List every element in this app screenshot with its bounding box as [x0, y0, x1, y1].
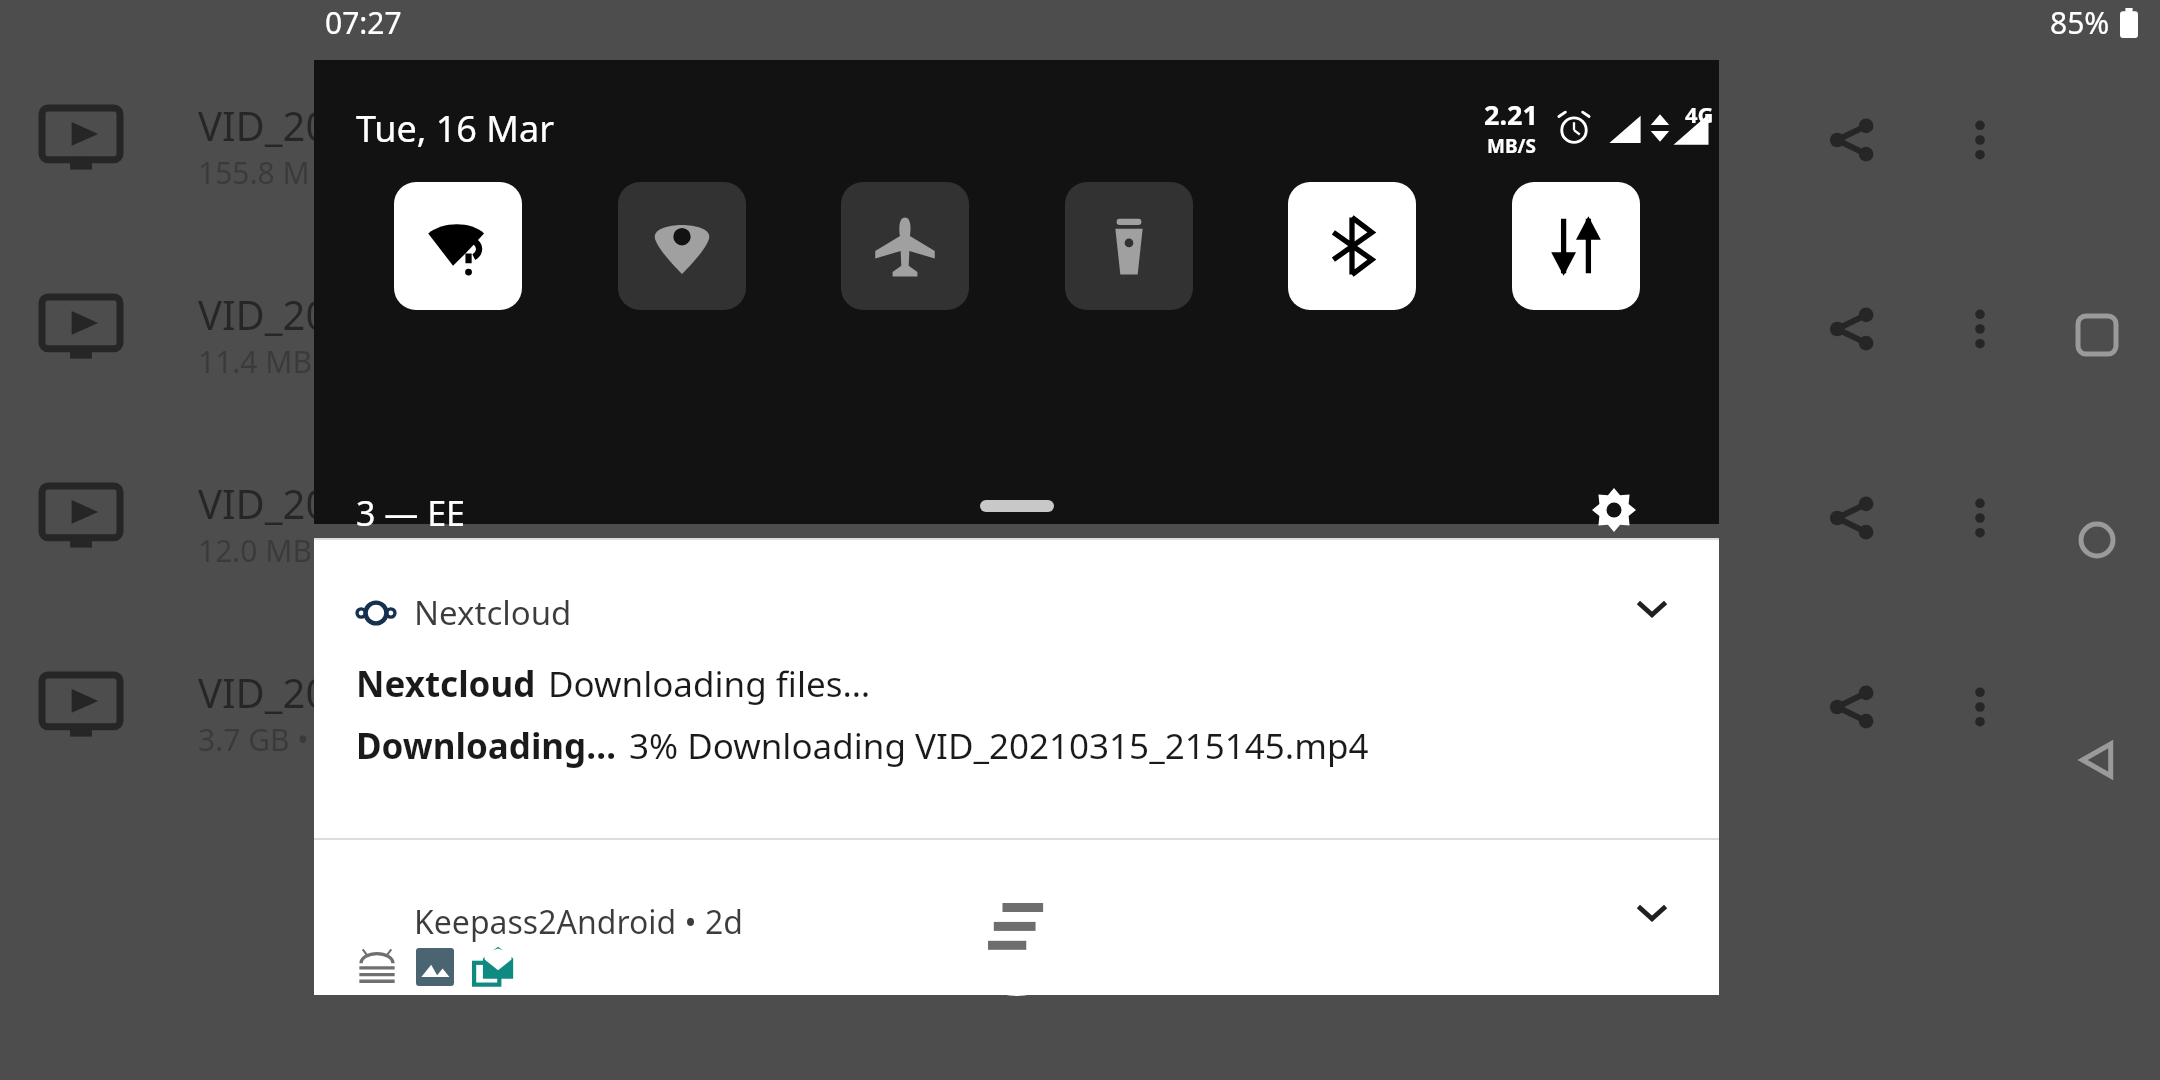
button[interactable]: More options [1948, 108, 2012, 172]
button[interactable]: Quick setting 4 [1288, 182, 1416, 310]
staticText: 07:27 [325, 2, 402, 43]
staticText: VID_20 [198, 476, 329, 530]
staticText: VID_20 [198, 665, 329, 719]
button[interactable]: Share [1820, 108, 1884, 172]
button[interactable]: Quick setting 0 [394, 182, 522, 310]
button[interactable]: Nextcloud [356, 590, 572, 635]
staticText: 3% Downloading VID_20210315_215145.mp4 [629, 722, 1369, 770]
staticText: VID_20 [198, 287, 329, 341]
staticText: 155.8 M [198, 152, 310, 193]
button[interactable]: Quick setting 2 [841, 182, 969, 310]
staticText: Tue, 16 Mar [356, 104, 555, 153]
staticText: Nextcloud [356, 660, 536, 708]
button[interactable]: Share [1820, 486, 1884, 550]
button[interactable]: Quick setting 3 [1065, 182, 1193, 310]
staticText: Downloading… [356, 722, 617, 770]
button[interactable]: Recents [2062, 300, 2132, 370]
staticText: MB/S [1487, 133, 1536, 159]
staticText: 4G [1685, 99, 1714, 129]
button[interactable]: Home [2062, 505, 2132, 575]
button[interactable]: Expand [1620, 576, 1684, 640]
button[interactable]: Quick setting 1 [618, 182, 746, 310]
staticText: Nextcloud [414, 590, 572, 635]
staticText: 12.0 MB [198, 530, 313, 571]
button[interactable]: More options [1948, 297, 2012, 361]
staticText: Keepass2Android • 2d [414, 900, 743, 944]
button[interactable]: Expand [1620, 880, 1684, 944]
staticText: 2.21 [1484, 96, 1538, 133]
button[interactable]: Share [1820, 297, 1884, 361]
staticText: VID_20 [198, 98, 329, 152]
button[interactable]: More options [1948, 675, 2012, 739]
button[interactable]: More options [1948, 486, 2012, 550]
staticText: Downloading files… [548, 660, 871, 708]
staticText: 11.4 MB [198, 341, 313, 382]
button[interactable]: Clear all notifications [944, 850, 1090, 996]
button[interactable]: Share [1820, 675, 1884, 739]
staticText: 85% [2050, 2, 2110, 43]
button[interactable]: Settings [1582, 478, 1646, 542]
button[interactable]: Back [2062, 725, 2132, 795]
staticText: 3 — EE [356, 490, 465, 536]
staticText: 3.7 GB • [198, 719, 309, 760]
button[interactable]: Quick setting 5 [1512, 182, 1640, 310]
